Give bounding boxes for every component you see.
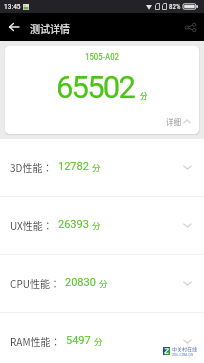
staticText: 1505-A02 <box>5 52 199 63</box>
button[interactable]: RAM性能： <box>0 313 204 363</box>
button[interactable]: CPU性能： <box>0 255 204 312</box>
staticText: ZOL.COM.CN <box>172 352 193 357</box>
button[interactable]: Share <box>176 13 204 41</box>
staticText: 详细 <box>166 116 181 127</box>
staticText: RAM性能： <box>10 334 61 348</box>
staticText: 3D性能： <box>10 160 53 174</box>
staticText: 测试详情 <box>30 21 70 35</box>
staticText: 12782 <box>58 160 89 173</box>
staticText: 13:45 <box>4 2 21 11</box>
staticText: 中关村在线 <box>172 345 198 352</box>
staticText: 65502 <box>56 69 135 105</box>
staticText: 82% <box>169 3 181 11</box>
staticText: 分 <box>99 277 108 289</box>
staticText: 5497 <box>66 334 91 347</box>
staticText: UX性能： <box>10 218 53 232</box>
button[interactable]: 3D性能： <box>0 139 204 196</box>
staticText: 20830 <box>65 276 96 289</box>
staticText: 分 <box>92 219 101 231</box>
staticText: 分 <box>140 90 148 101</box>
staticText: CPU性能： <box>10 276 60 290</box>
button[interactable]: 详细 <box>158 111 199 134</box>
staticText: 分 <box>92 161 101 173</box>
button[interactable]: UX性能： <box>0 197 204 254</box>
button[interactable]: Back <box>0 13 28 41</box>
staticText: 分 <box>94 335 103 347</box>
staticText: 26393 <box>58 218 89 231</box>
